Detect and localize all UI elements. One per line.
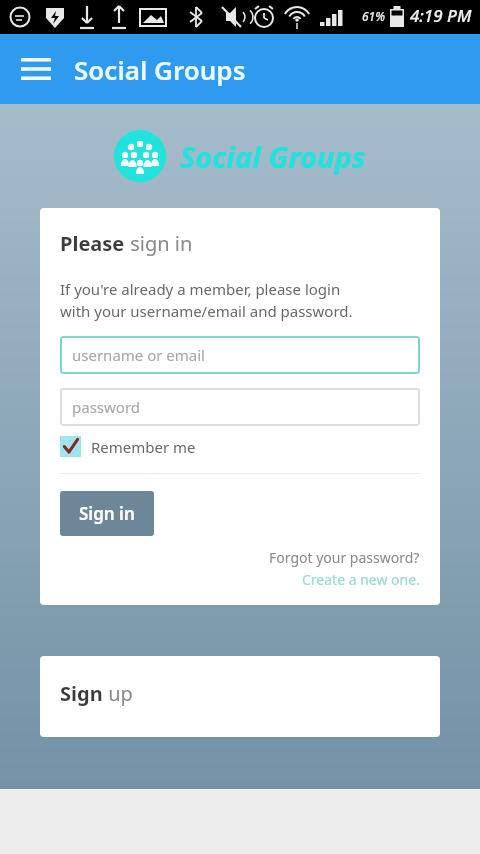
staticText: username or email [72, 345, 205, 365]
staticText: Forgot your password? [269, 548, 420, 567]
staticText: Sign in [79, 502, 135, 525]
staticText: Sign [60, 680, 103, 707]
button[interactable]: Create a new one. [302, 570, 420, 589]
button[interactable]: Remember me [60, 436, 196, 457]
staticText: sign in [125, 230, 193, 257]
staticText: 4:19 PM [410, 4, 472, 27]
button[interactable]: Open navigation menu [10, 43, 62, 95]
button[interactable]: Sign in [60, 491, 154, 536]
staticText: 61% [362, 8, 386, 24]
staticText: up [103, 680, 133, 707]
staticText: Social Groups [180, 137, 366, 176]
staticText: If you're already a member, please login… [60, 279, 353, 322]
staticText: Remember me [91, 437, 196, 457]
button[interactable]: password [60, 388, 420, 426]
button[interactable]: username or email [60, 336, 420, 374]
staticText: password [72, 397, 140, 417]
staticText: Social Groups [74, 52, 246, 87]
staticText: Please [60, 230, 125, 257]
